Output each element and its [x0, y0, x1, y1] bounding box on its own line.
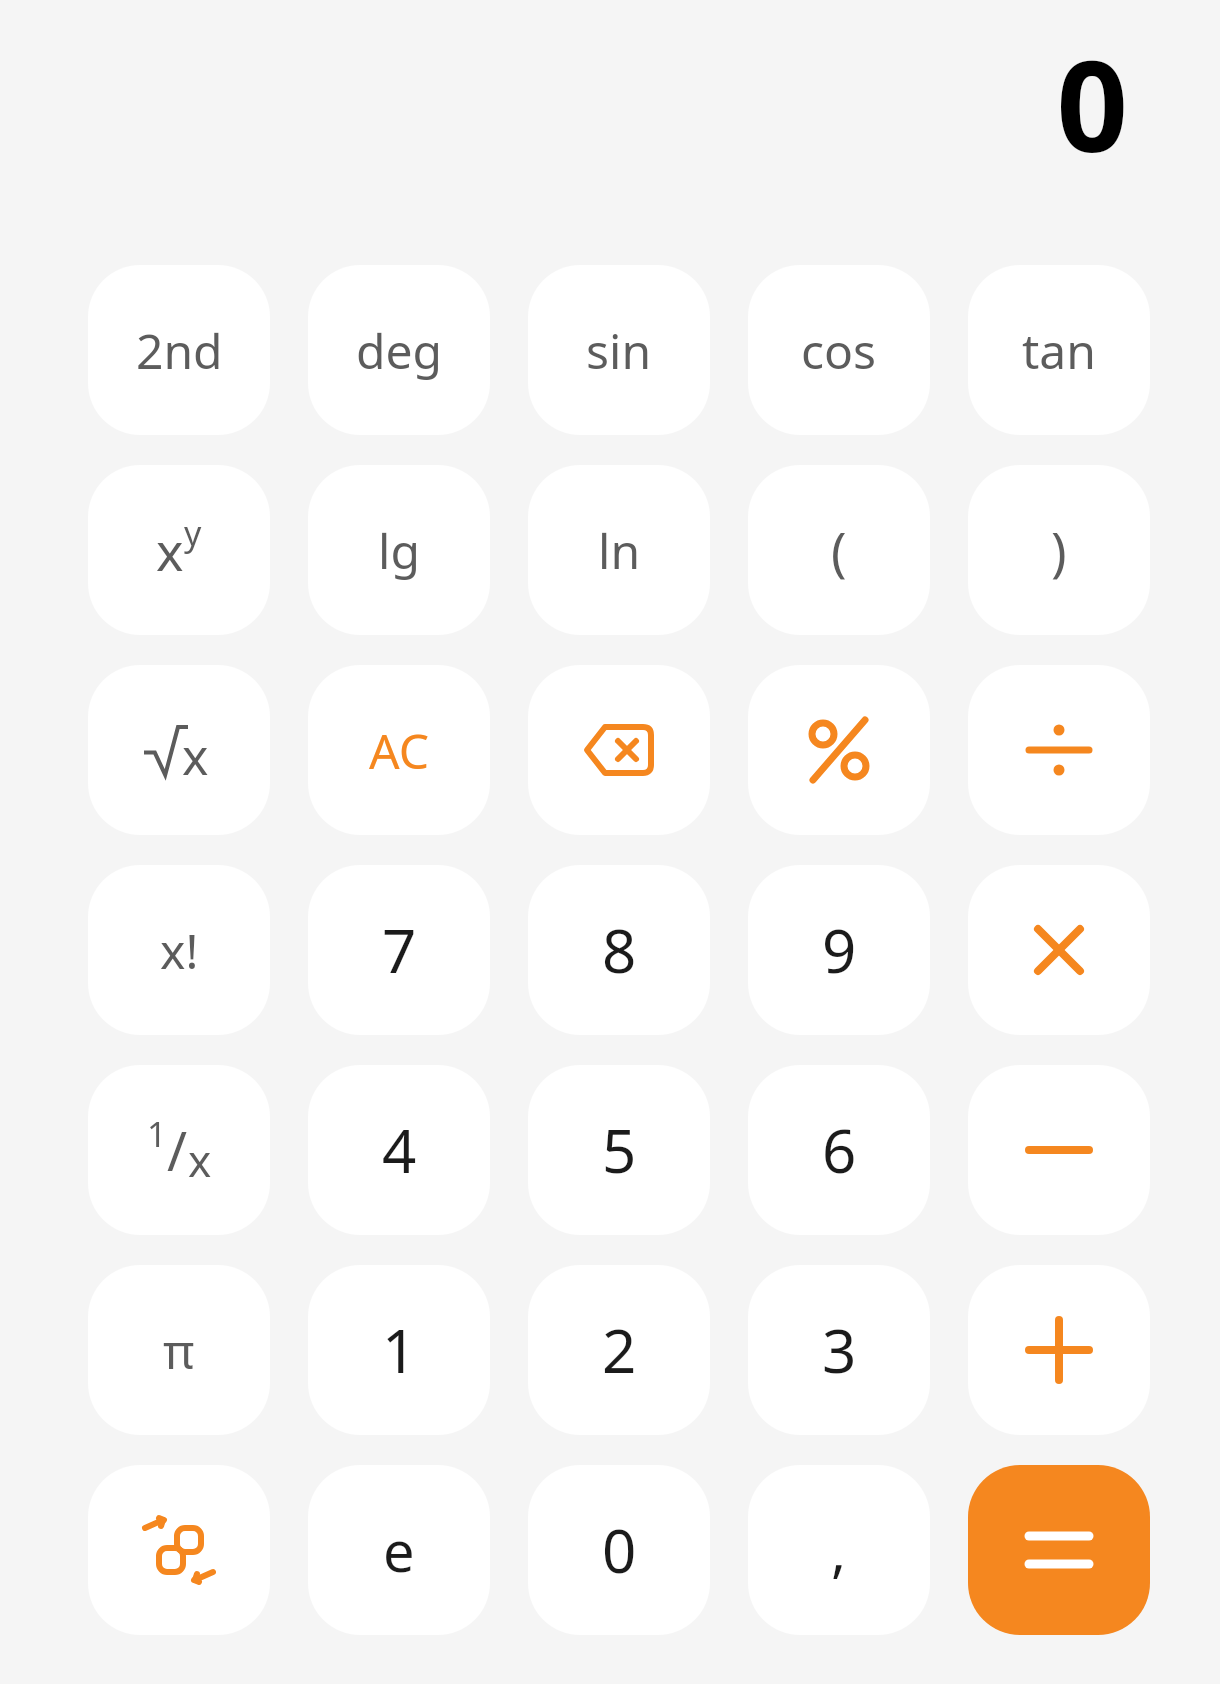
button[interactable]: 5: [528, 1065, 710, 1235]
staticText: 6: [822, 1109, 857, 1191]
button[interactable]: 8: [528, 865, 710, 1035]
staticText: π: [163, 1318, 195, 1383]
button[interactable]: 2nd: [88, 265, 270, 435]
staticText: x: [188, 1130, 212, 1190]
staticText: 0: [602, 1509, 637, 1591]
button[interactable]: Percent: [748, 665, 930, 835]
button[interactable]: Equals: [968, 1465, 1150, 1635]
staticText: sin: [586, 318, 652, 383]
button[interactable]: Divide: [968, 665, 1150, 835]
staticText: lg: [378, 518, 420, 583]
button[interactable]: Multiply: [968, 865, 1150, 1035]
button[interactable]: 7: [308, 865, 490, 1035]
staticText: cos: [801, 318, 877, 383]
button[interactable]: (: [748, 465, 930, 635]
staticText: x: [156, 515, 184, 586]
staticText: AC: [369, 718, 430, 783]
staticText: 9: [822, 909, 857, 991]
staticText: ln: [598, 518, 641, 583]
button[interactable]: Plus: [968, 1265, 1150, 1435]
button[interactable]: 3: [748, 1265, 930, 1435]
button[interactable]: AC: [308, 665, 490, 835]
button[interactable]: 4: [308, 1065, 490, 1235]
button[interactable]: One over x: [88, 1065, 270, 1235]
button[interactable]: Unit converter: [88, 1465, 270, 1635]
staticText: x: [182, 722, 209, 790]
staticText: tan: [1022, 318, 1096, 383]
staticText: 5: [602, 1109, 637, 1191]
staticText: (: [831, 515, 847, 586]
button[interactable]: x to the power of y: [88, 465, 270, 635]
staticText: 3: [822, 1309, 857, 1391]
staticText: x!: [160, 918, 199, 983]
button[interactable]: x!: [88, 865, 270, 1035]
staticText: 1: [147, 1111, 167, 1157]
button[interactable]: 9: [748, 865, 930, 1035]
button[interactable]: deg: [308, 265, 490, 435]
button[interactable]: sin: [528, 265, 710, 435]
staticText: ): [1051, 515, 1067, 586]
staticText: 7: [382, 909, 417, 991]
staticText: /: [167, 1113, 188, 1187]
button[interactable]: 1: [308, 1265, 490, 1435]
button[interactable]: Square root: [88, 665, 270, 835]
button[interactable]: 2: [528, 1265, 710, 1435]
staticText: 2: [602, 1309, 637, 1391]
staticText: 2nd: [136, 318, 223, 383]
button[interactable]: Minus: [968, 1065, 1150, 1235]
button[interactable]: ln: [528, 465, 710, 635]
button[interactable]: 0: [528, 1465, 710, 1635]
button[interactable]: lg: [308, 465, 490, 635]
button[interactable]: ): [968, 465, 1150, 635]
button[interactable]: Backspace: [528, 665, 710, 835]
staticText: y: [184, 510, 202, 556]
staticText: e: [383, 1512, 415, 1588]
staticText: ,: [831, 1512, 847, 1588]
button[interactable]: cos: [748, 265, 930, 435]
button[interactable]: e: [308, 1465, 490, 1635]
button[interactable]: tan: [968, 265, 1150, 435]
staticText: 4: [382, 1109, 417, 1191]
staticText: deg: [356, 318, 443, 383]
staticText: 1: [382, 1309, 417, 1391]
button[interactable]: 6: [748, 1065, 930, 1235]
button[interactable]: π: [88, 1265, 270, 1435]
staticText: 0: [1056, 18, 1128, 188]
staticText: 8: [602, 909, 637, 991]
button[interactable]: ,: [748, 1465, 930, 1635]
